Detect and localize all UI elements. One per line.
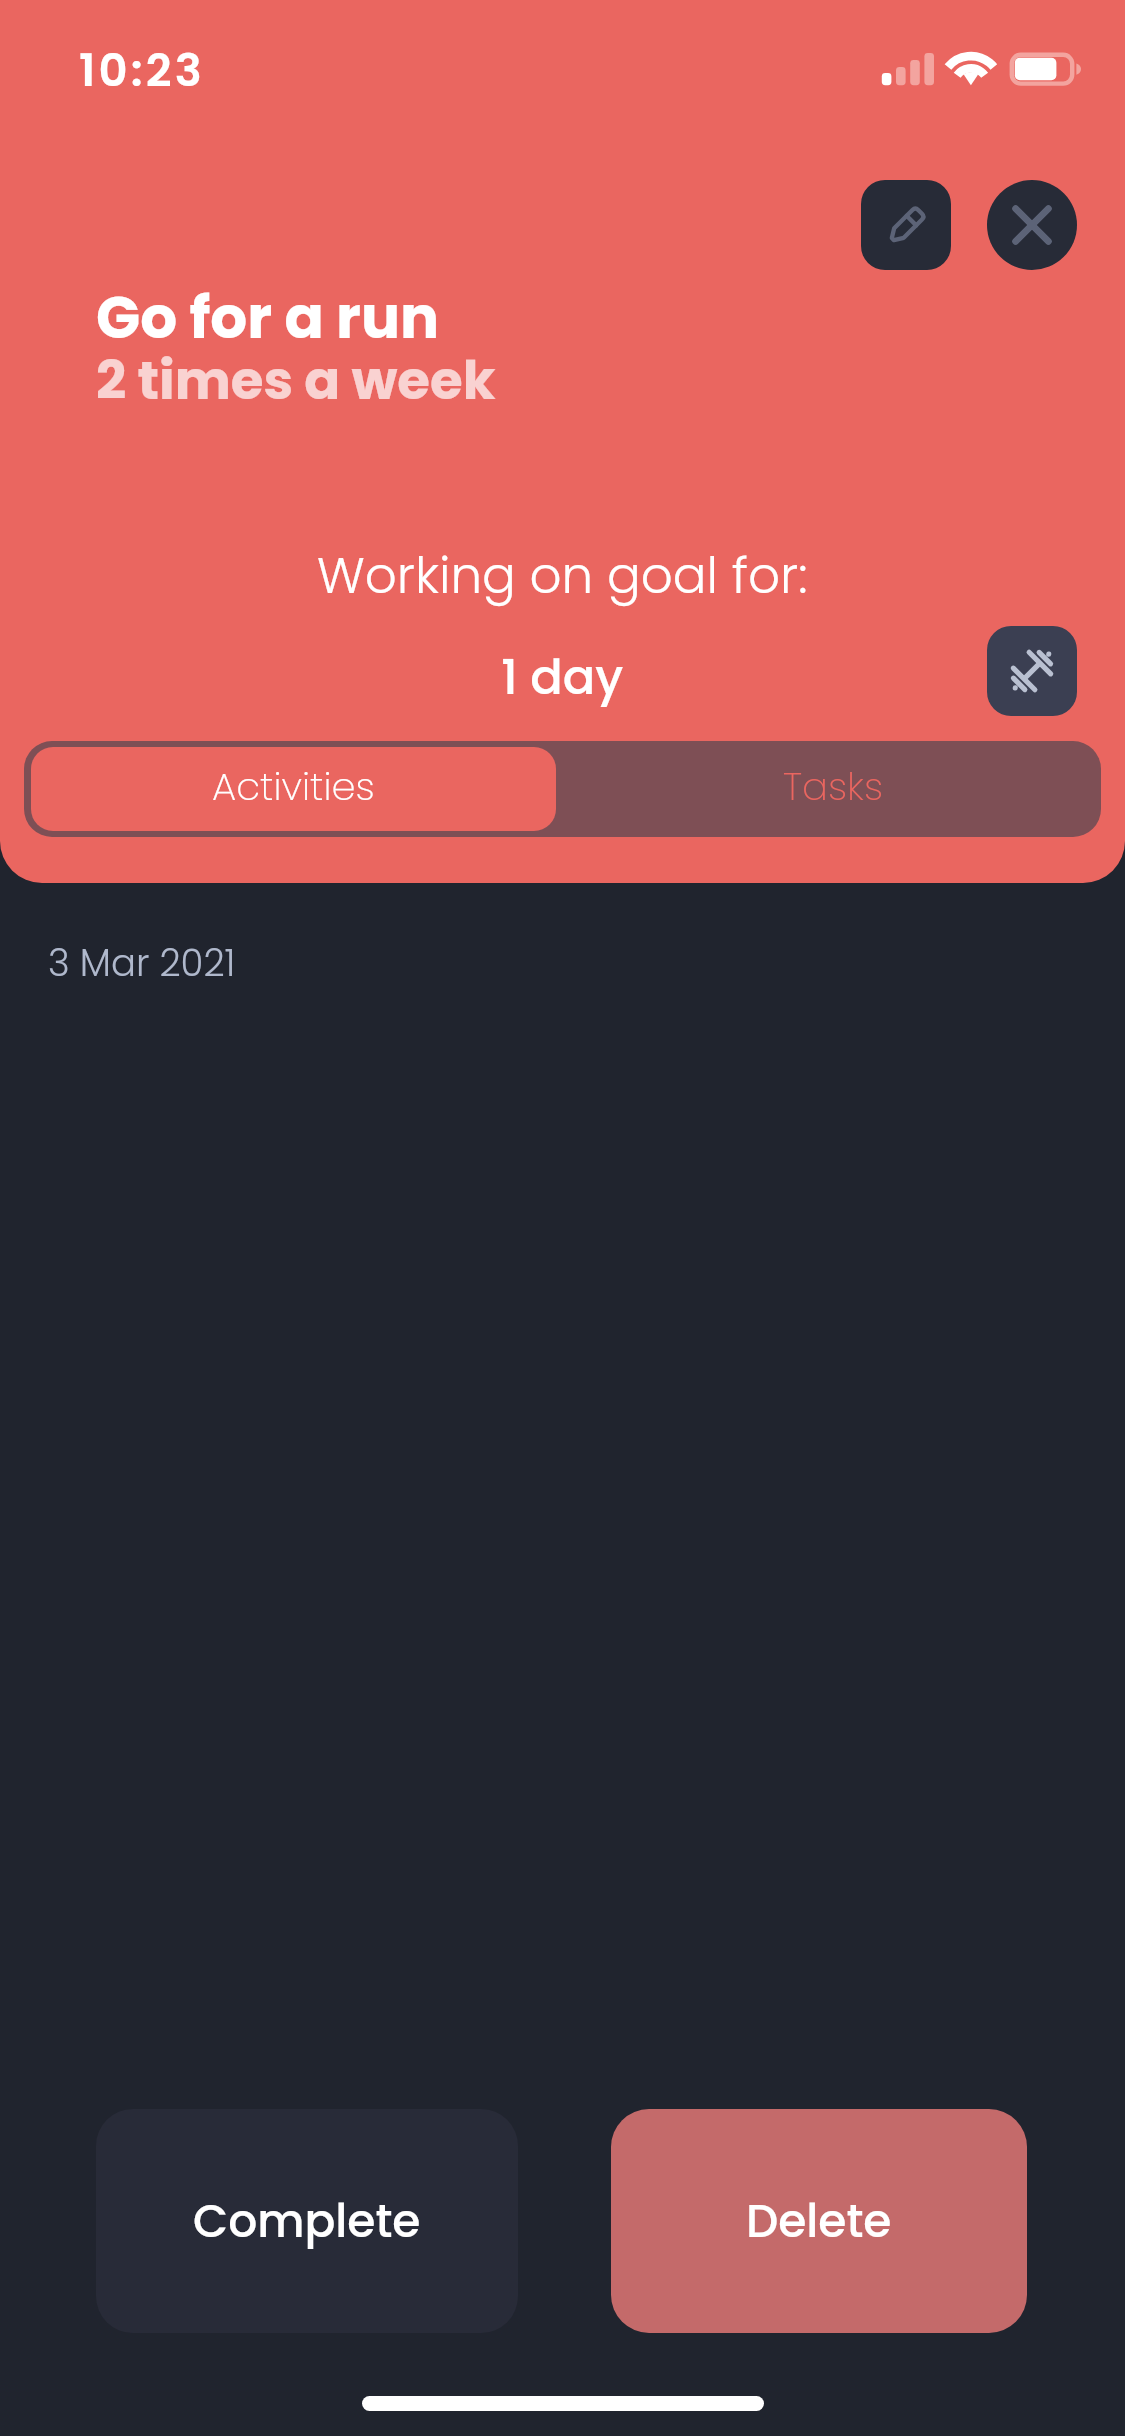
staticText: 10:23 <box>79 39 205 102</box>
staticText: Tasks <box>783 760 884 814</box>
button[interactable]: Close <box>987 180 1077 270</box>
button[interactable]: Activities <box>31 747 556 831</box>
staticText: 1 day <box>501 644 624 711</box>
staticText: Go for a run <box>96 277 440 358</box>
staticText: Activities <box>212 760 375 814</box>
button[interactable]: Edit goal <box>861 180 951 270</box>
button[interactable]: Delete <box>611 2109 1027 2333</box>
staticText: Working on goal for: <box>317 541 808 611</box>
staticText: Delete <box>746 2189 892 2253</box>
button[interactable]: Activity type <box>987 626 1077 716</box>
staticText: 3 Mar 2021 <box>48 937 236 989</box>
staticText: Complete <box>193 2189 421 2253</box>
button[interactable]: Tasks <box>563 741 1101 837</box>
button[interactable]: Complete <box>96 2109 518 2333</box>
staticText: 2 times a week <box>96 343 496 417</box>
